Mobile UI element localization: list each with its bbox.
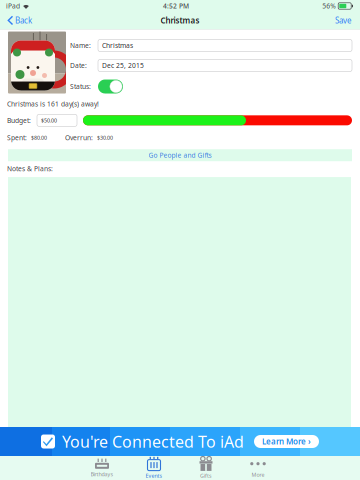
staticText: Save [335, 15, 352, 26]
button[interactable]: Back [0, 12, 42, 29]
button[interactable]: Go People and Gifts [8, 149, 352, 161]
staticText: $30.00 [97, 134, 113, 141]
button[interactable]: Birthdays [76, 456, 128, 479]
staticText: Christmas [102, 41, 133, 50]
button[interactable]: Save [325, 12, 360, 29]
button[interactable]: Dec 25, 2015 [98, 59, 352, 71]
button[interactable]: More [232, 456, 284, 479]
staticText: Date: [70, 61, 87, 70]
staticText: iPad [6, 2, 20, 10]
staticText: Go People and Gifts [148, 151, 211, 160]
button[interactable]: Status [98, 79, 123, 93]
staticText: Dec 25, 2015 [102, 61, 144, 70]
staticText: Name: [70, 41, 91, 50]
staticText: Christmas [160, 15, 199, 26]
staticText: More [251, 471, 264, 478]
button[interactable]: Gifts [180, 456, 232, 479]
staticText: Status: [70, 82, 91, 91]
staticText: You're Connected To iAd [62, 431, 244, 452]
staticText: Budget: [7, 116, 31, 125]
button[interactable]: Christmas [98, 39, 352, 51]
staticText: 4:52 PM [163, 2, 189, 10]
button[interactable]: $50.00 [37, 114, 77, 126]
button[interactable]: Learn More › [254, 435, 319, 448]
staticText: Notes & Plans: [7, 164, 53, 173]
staticText: Back [15, 15, 32, 26]
staticText: Learn More › [262, 436, 311, 447]
staticText: Events [145, 472, 162, 479]
staticText: Christmas is 161 day(s) away! [7, 99, 99, 108]
button[interactable]: You're Connected To iAd [0, 427, 360, 456]
staticText: Overrun: [65, 133, 93, 142]
staticText: 56% [322, 2, 336, 10]
staticText: Gifts [200, 472, 212, 479]
staticText: $50.00 [41, 117, 57, 124]
staticText: Spent: [7, 133, 27, 142]
staticText: Birthdays [90, 471, 113, 478]
button[interactable]: Events [128, 456, 180, 479]
staticText: $80.00 [31, 134, 47, 141]
